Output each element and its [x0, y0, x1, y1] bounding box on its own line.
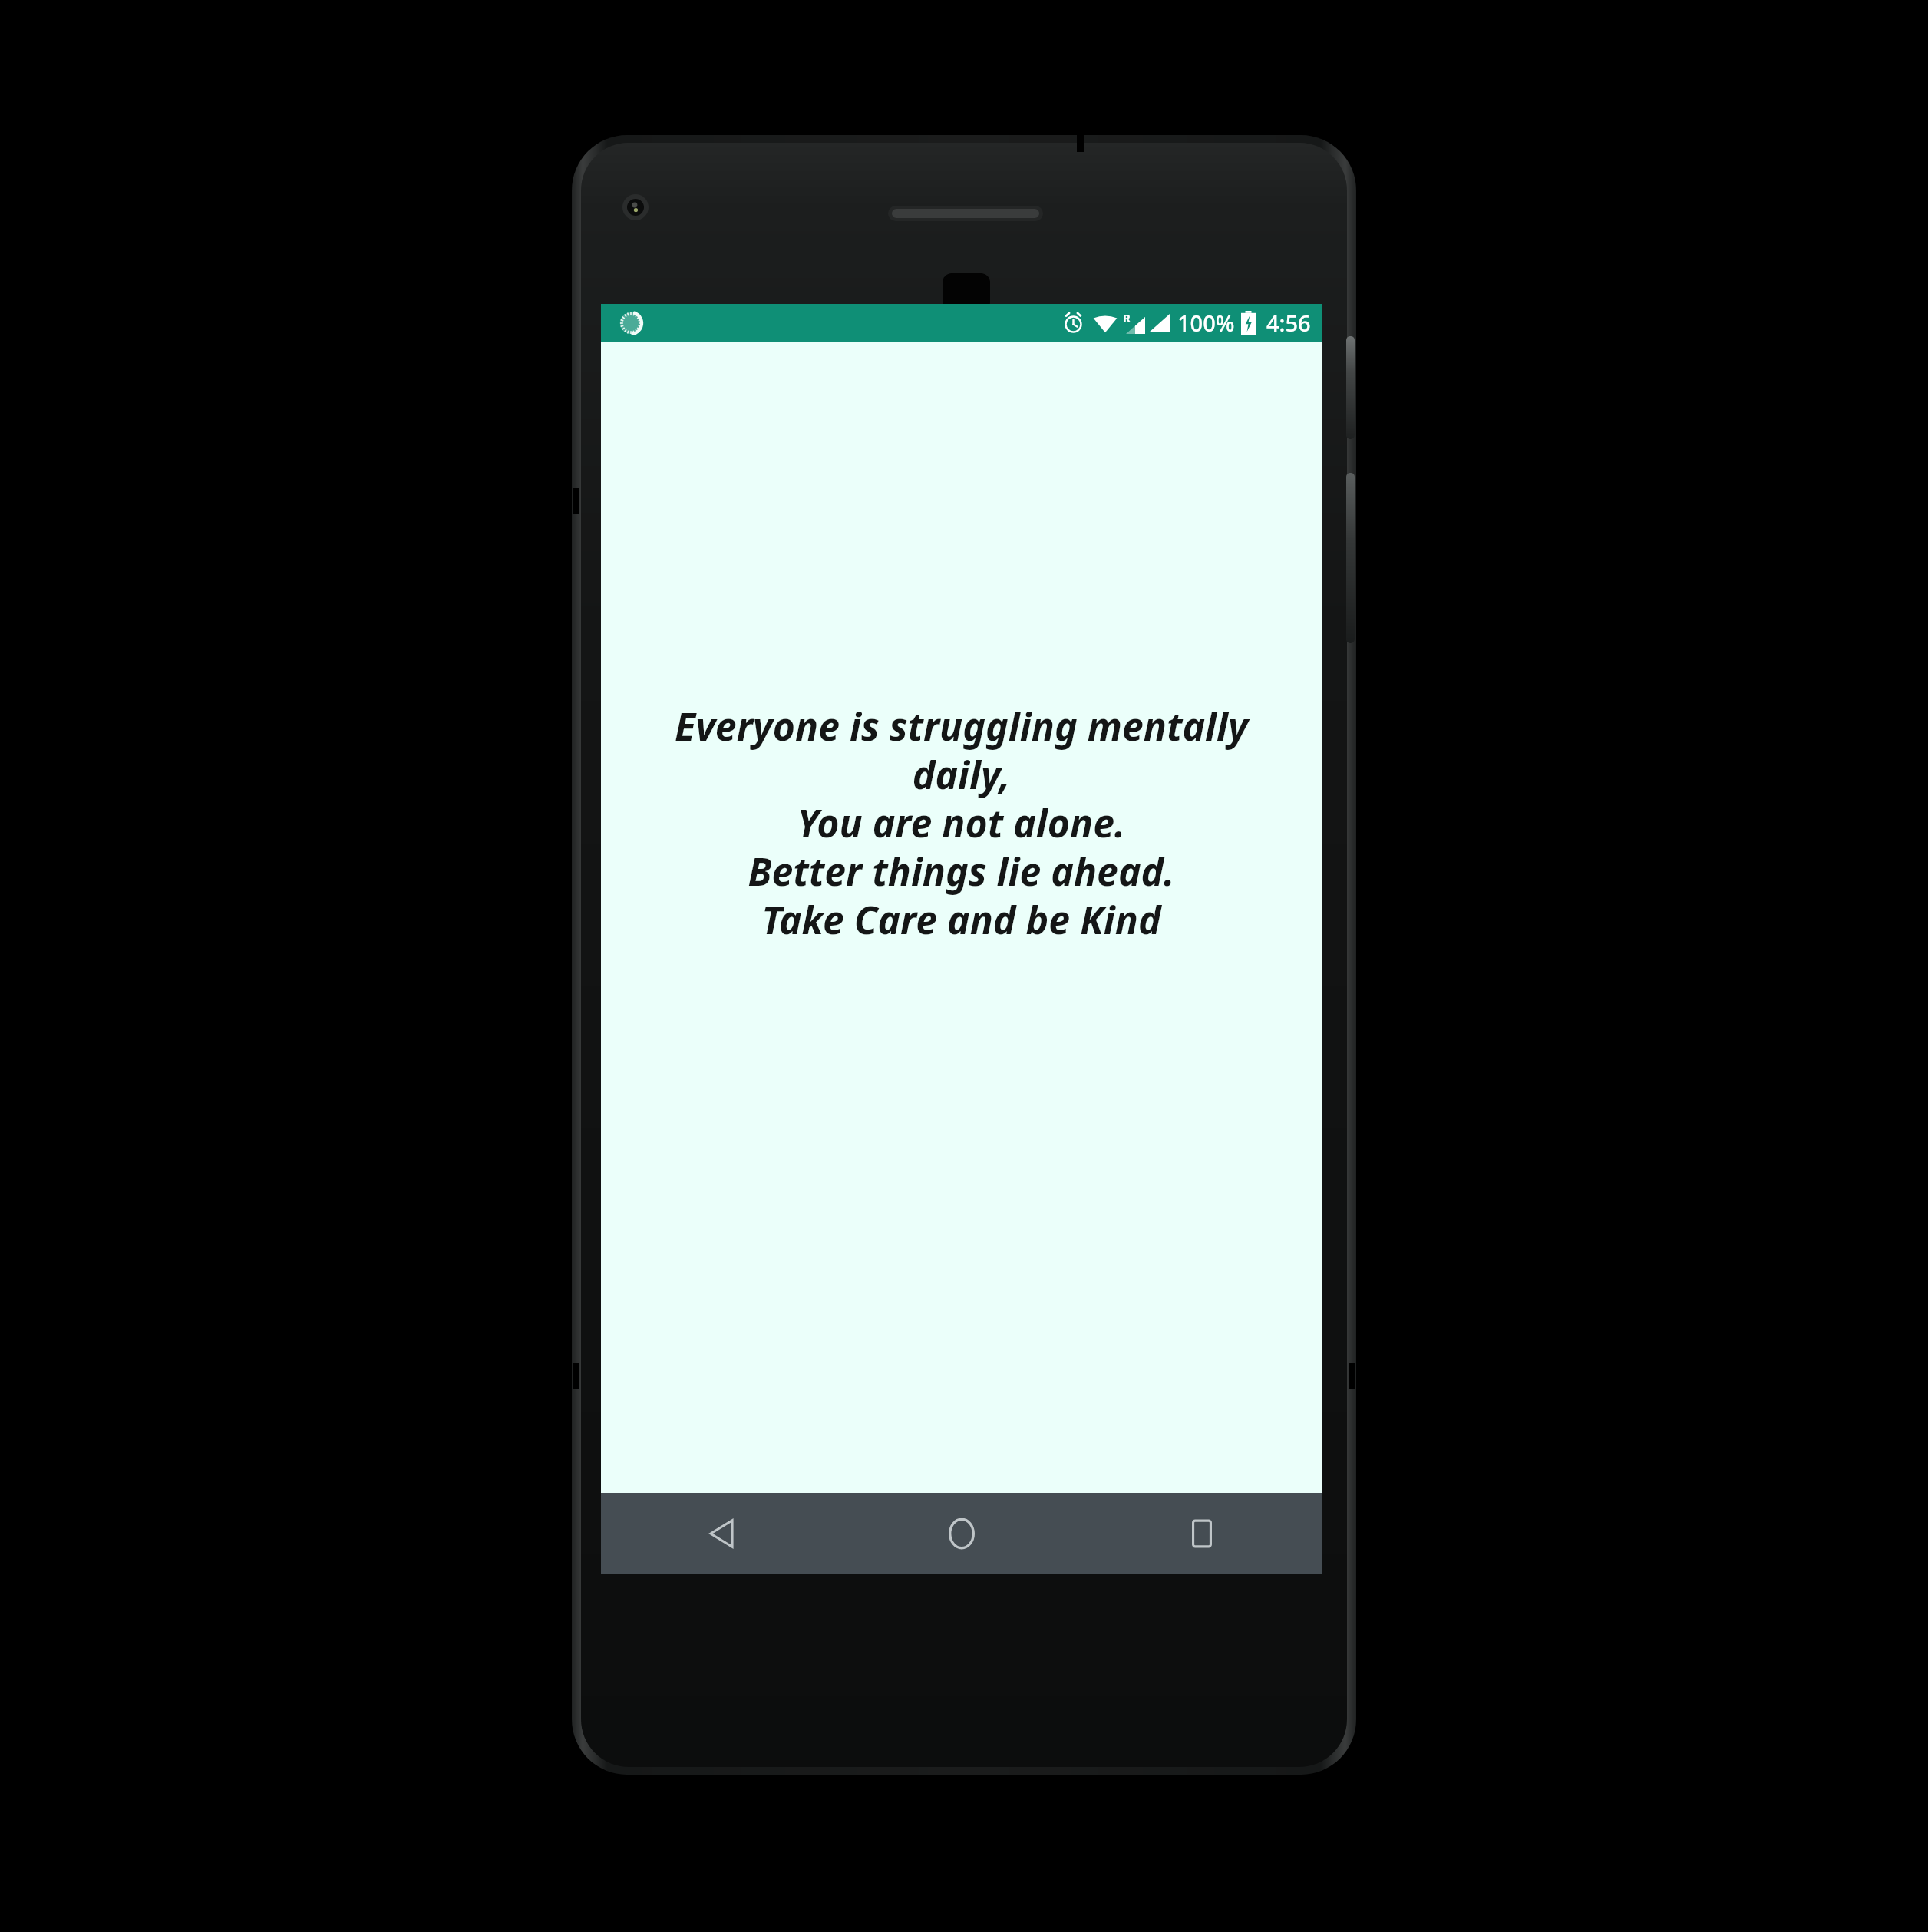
staticText: 4:56 — [1266, 308, 1311, 338]
staticText: R — [1123, 310, 1131, 325]
button[interactable]: Back — [601, 1493, 841, 1574]
staticText: 100% — [1177, 308, 1235, 338]
button[interactable]: Syncing notification — [616, 304, 646, 342]
button[interactable]: Recent apps — [1081, 1493, 1322, 1574]
button[interactable]: Home — [841, 1493, 1081, 1574]
staticText: Everyone is struggling mentally daily, Y… — [622, 700, 1300, 946]
